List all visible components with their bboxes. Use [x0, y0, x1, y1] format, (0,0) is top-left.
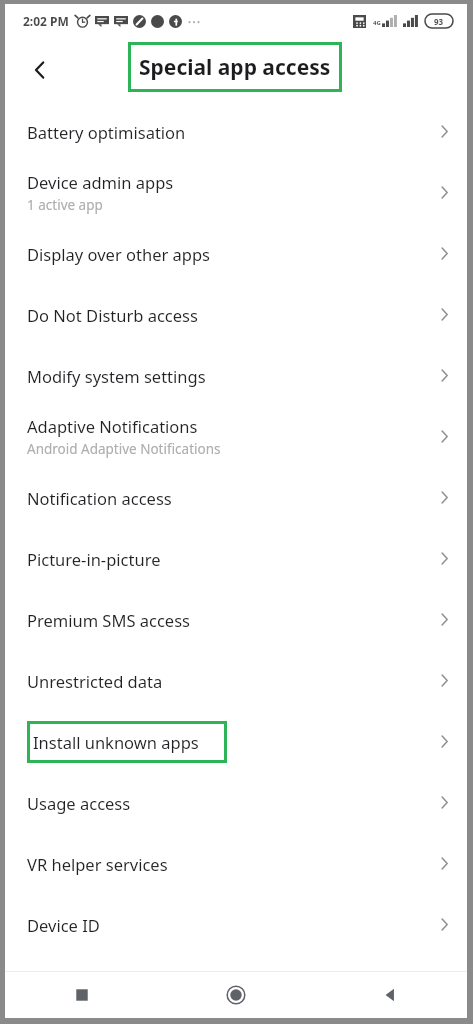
button[interactable]: Display over other apps [5, 223, 467, 284]
button[interactable]: Usage access [5, 772, 467, 833]
staticText: Display over other apps [27, 243, 211, 265]
button[interactable]: Modify system settings [5, 345, 467, 406]
button[interactable]: Device admin apps [5, 162, 467, 223]
staticText: Android Adaptive Notifications [27, 440, 221, 458]
button[interactable]: Back [19, 49, 61, 91]
staticText: Modify system settings [27, 365, 206, 387]
staticText: 1 active app [27, 196, 103, 214]
button[interactable]: Recents [5, 972, 159, 1018]
button[interactable]: Notification access [5, 467, 467, 528]
staticText: Install unknown apps [33, 731, 199, 753]
staticText: Special app access [139, 53, 331, 82]
button[interactable]: Install unknown apps [5, 711, 467, 772]
button[interactable]: Adaptive Notifications [5, 406, 467, 467]
button[interactable]: Home [159, 972, 313, 1018]
staticText: Picture-in-picture [27, 548, 161, 570]
staticText: Adaptive Notifications [27, 415, 198, 437]
button[interactable]: Battery optimisation [5, 101, 467, 162]
staticText: 93 [434, 16, 444, 27]
button[interactable]: VR helper services [5, 833, 467, 894]
button[interactable]: Back [313, 972, 467, 1018]
staticText: Battery optimisation [27, 121, 186, 143]
staticText: 2:02 PM [23, 13, 69, 29]
staticText: 4G [373, 19, 381, 27]
button[interactable]: Premium SMS access [5, 589, 467, 650]
staticText: Device admin apps [27, 171, 174, 193]
staticText: Usage access [27, 792, 131, 814]
button[interactable]: Picture-in-picture [5, 528, 467, 589]
staticText: Premium SMS access [27, 609, 190, 631]
button[interactable]: Device ID [5, 894, 467, 955]
button[interactable]: Unrestricted data [5, 650, 467, 711]
staticText: Do Not Disturb access [27, 304, 198, 326]
staticText: Unrestricted data [27, 670, 163, 692]
button[interactable]: Do Not Disturb access [5, 284, 467, 345]
staticText: Notification access [27, 487, 172, 509]
staticText: Device ID [27, 914, 100, 936]
staticText: VR helper services [27, 853, 168, 875]
